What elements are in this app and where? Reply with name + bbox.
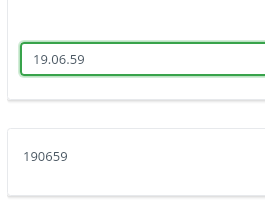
staticText: 19.06.59	[33, 50, 85, 68]
staticText: 190659	[23, 147, 68, 165]
button[interactable]: 190659	[7, 128, 265, 196]
button[interactable]: 19.06.59	[20, 42, 265, 76]
